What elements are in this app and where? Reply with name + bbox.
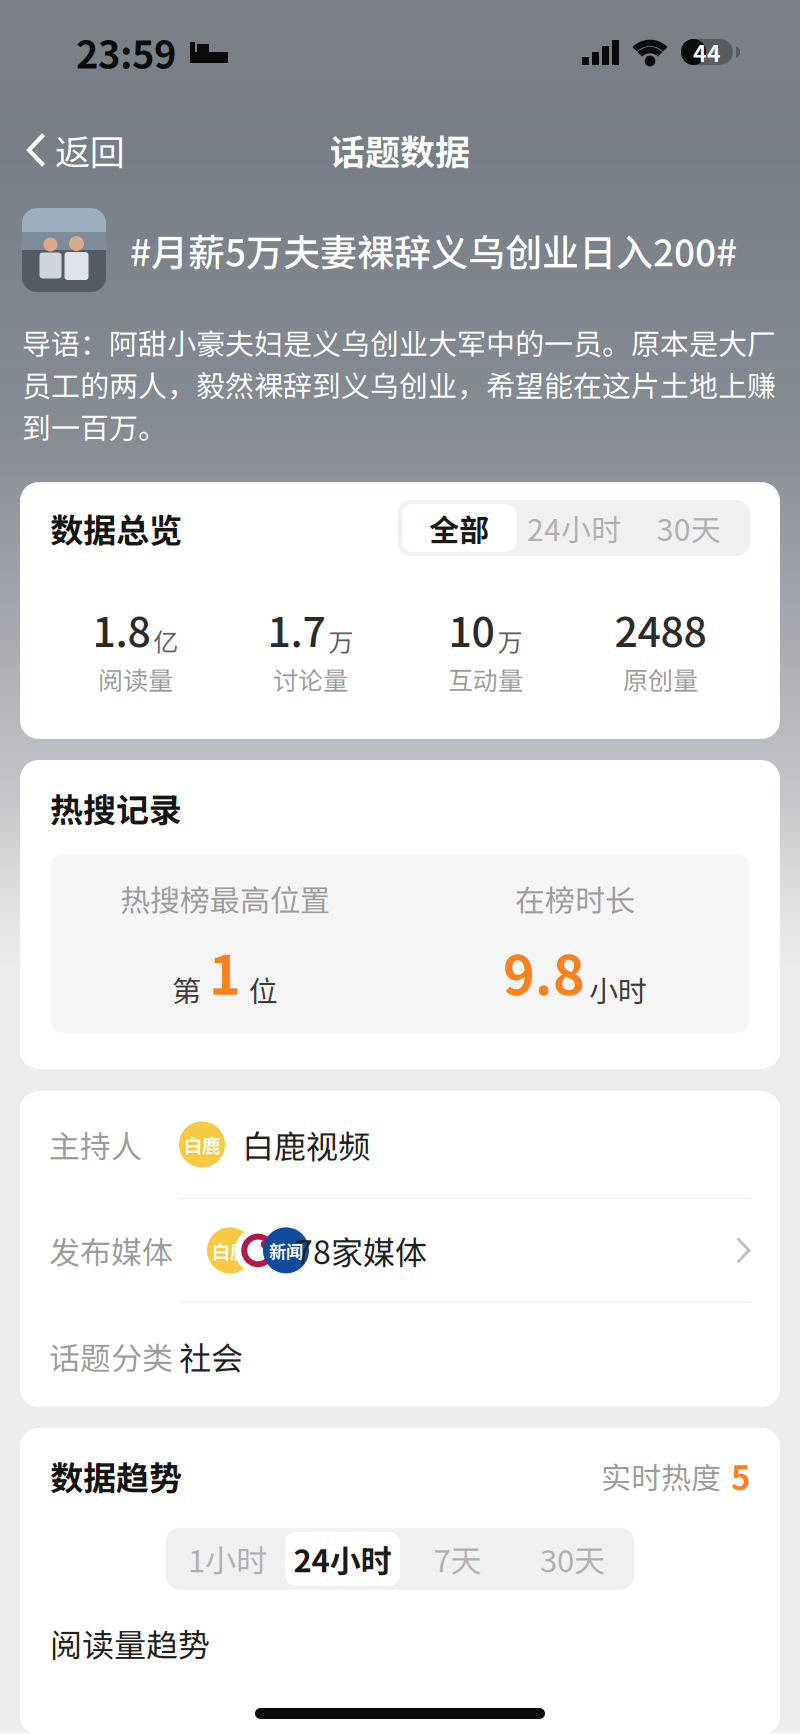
staticText: 24小时 [527, 506, 621, 550]
staticText: 话题分类 [49, 1334, 173, 1379]
staticText: 数据趋势 [50, 1452, 182, 1500]
staticText: 讨论量 [273, 661, 348, 697]
staticText: 1.8 [92, 599, 150, 659]
staticText: 阅读量 [98, 661, 173, 697]
staticText: 44 [693, 35, 721, 69]
staticText: 数据总览 [50, 504, 182, 552]
button[interactable]: 1小时 [170, 1532, 285, 1586]
staticText: 话题数据 [330, 125, 470, 175]
staticText: 1 [209, 932, 241, 1010]
staticText: 热搜榜最高位置 [120, 877, 330, 920]
staticText: 万 [497, 623, 522, 659]
staticText: 主持人 [49, 1122, 142, 1167]
staticText: 1.7 [267, 599, 325, 659]
staticText: 在榜时长 [515, 877, 635, 920]
staticText: 新闻 [269, 1238, 303, 1263]
staticText: 发布媒体 [49, 1228, 173, 1273]
staticText: 23:59 [76, 24, 176, 79]
staticText: 5 [731, 1452, 750, 1500]
staticText: 1小时 [188, 1536, 267, 1581]
staticText: 互动量 [448, 661, 523, 697]
staticText: 位 [249, 968, 278, 1010]
staticText: 9.8 [503, 932, 585, 1010]
button[interactable]: 24小时 [285, 1532, 400, 1586]
staticText: 社会 [179, 1333, 243, 1379]
staticText: 10 [448, 599, 494, 659]
staticText: 热搜记录 [50, 784, 182, 832]
staticText: #月薪5万夫妻裸辞义乌创业日入200# [130, 223, 737, 277]
staticText: 30天 [657, 506, 721, 550]
button[interactable]: 30天 [631, 504, 746, 552]
staticText: 小时 [589, 968, 647, 1010]
button[interactable]: 发布媒体 [20, 1199, 780, 1301]
staticText: 2488 [614, 599, 706, 659]
staticText: 白鹿视频 [242, 1121, 370, 1168]
staticText: 白鹿 [184, 1131, 220, 1158]
button[interactable]: 30天 [515, 1532, 630, 1586]
staticText: 原创量 [623, 661, 698, 697]
staticText: 亿 [153, 623, 178, 659]
staticText: 78家媒体 [295, 1227, 427, 1273]
staticText: 阅读量趋势 [50, 1620, 210, 1666]
button[interactable]: 24小时 [517, 504, 631, 552]
staticText: 白鹿 [212, 1237, 248, 1264]
button[interactable]: 7天 [400, 1532, 515, 1586]
staticText: 实时热度 [601, 1454, 721, 1498]
staticText: 全部 [429, 506, 489, 550]
staticText: 30天 [540, 1536, 605, 1581]
staticText: 导语：阿甜小豪夫妇是义乌创业大军中的一员。原本是大厂员工的两人，毅然裸辞到义乌创… [22, 321, 776, 447]
staticText: 返回 [55, 125, 125, 175]
staticText: 第 [172, 968, 201, 1010]
staticText: 7天 [433, 1536, 481, 1581]
staticText: 万 [328, 623, 353, 659]
button[interactable]: 全部 [402, 504, 517, 552]
button[interactable]: 返回 [22, 119, 129, 181]
staticText: 24小时 [293, 1536, 391, 1581]
